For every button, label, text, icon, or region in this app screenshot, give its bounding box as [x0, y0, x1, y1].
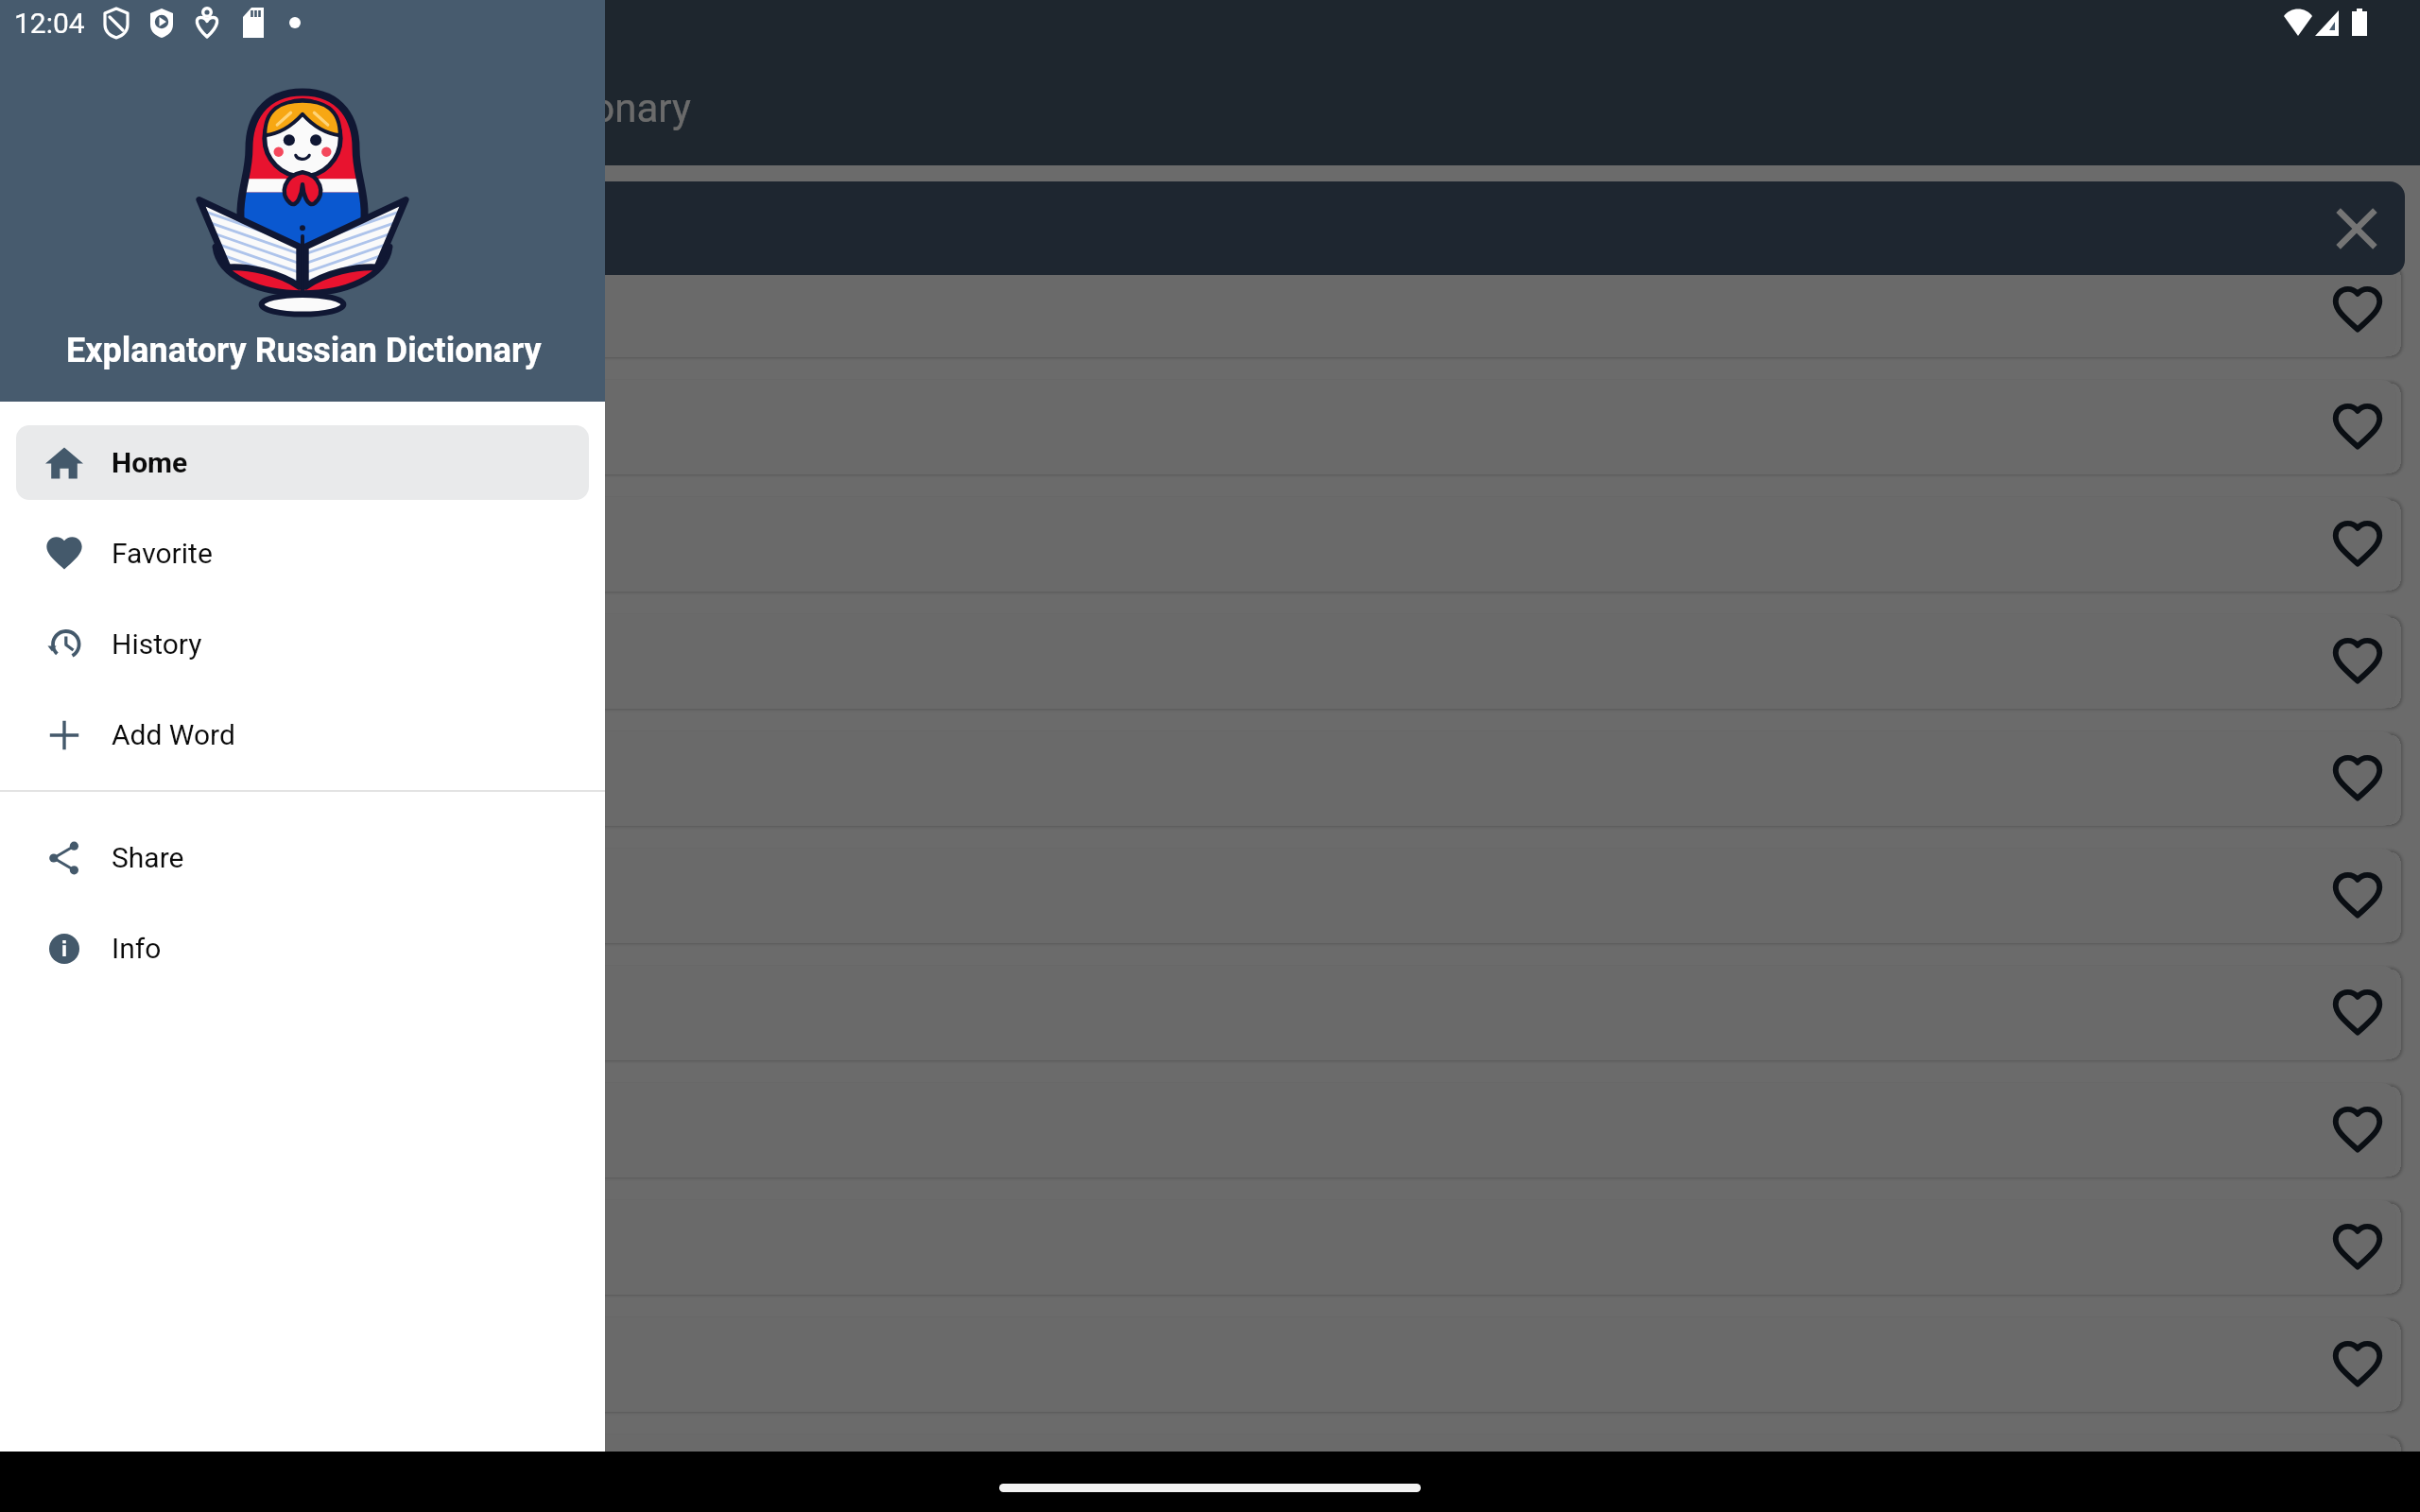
staticText: History: [112, 627, 202, 661]
button[interactable]: Clear search: [2329, 201, 2384, 256]
button[interactable]: Clear search: [15, 181, 2405, 275]
button[interactable]: Favorite: [25, 849, 2395, 943]
button[interactable]: Favorite: [25, 1435, 2395, 1512]
button[interactable]: Favorite: [2328, 867, 2387, 925]
staticText: Home: [112, 446, 188, 479]
button[interactable]: Share: [16, 820, 589, 895]
button[interactable]: Favorite: [25, 614, 2395, 709]
button[interactable]: Info: [16, 911, 589, 986]
staticText: Favorite: [112, 537, 213, 570]
button[interactable]: Close navigation drawer: [0, 0, 2420, 1512]
button[interactable]: Add Word: [16, 697, 589, 772]
button[interactable]: Favorite: [2328, 1335, 2387, 1394]
button[interactable]: Favorite: [2328, 281, 2387, 339]
staticText: Add Word: [112, 718, 235, 751]
button[interactable]: Favorite: [25, 497, 2395, 592]
button[interactable]: Favorite: [25, 1083, 2395, 1177]
button[interactable]: Home: [16, 425, 589, 500]
button[interactable]: Favorite: [16, 516, 589, 591]
button[interactable]: Favorite: [2328, 515, 2387, 574]
staticText: Info: [112, 932, 162, 965]
button[interactable]: Favorite: [2328, 632, 2387, 691]
button[interactable]: Favorite: [2328, 1101, 2387, 1160]
button[interactable]: Favorite: [25, 966, 2395, 1060]
staticText: Share: [112, 841, 184, 874]
button[interactable]: Favorite: [2328, 749, 2387, 808]
button[interactable]: Favorite: [2328, 398, 2387, 456]
button[interactable]: Favorite: [25, 1317, 2395, 1412]
staticText: Explanatory Russian Dictionary: [146, 85, 691, 131]
button[interactable]: History: [16, 607, 589, 681]
button[interactable]: Favorite: [25, 263, 2395, 357]
button[interactable]: Favorite: [2328, 1218, 2387, 1277]
button[interactable]: Favorite: [25, 1200, 2395, 1295]
button[interactable]: Favorite: [25, 380, 2395, 474]
staticText: Explanatory Russian Dictionary: [66, 331, 542, 370]
button[interactable]: Favorite: [2328, 984, 2387, 1042]
staticText: 12:04: [14, 7, 85, 40]
button[interactable]: Favorite: [25, 731, 2395, 826]
